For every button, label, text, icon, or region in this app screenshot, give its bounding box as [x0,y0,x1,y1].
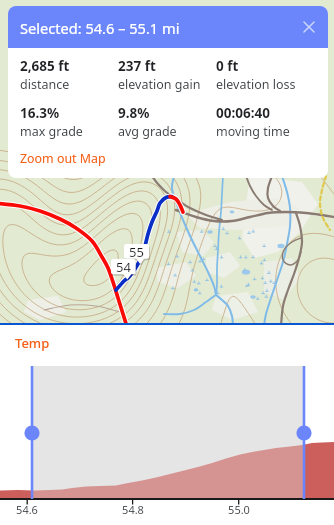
staticText: distance [20,76,70,93]
staticText: 54.6 [7,502,47,517]
staticText: 237 ft [118,57,156,75]
staticText: elevation gain [118,76,201,93]
staticText: Zoom out Map [20,150,106,167]
staticText: avg grade [118,123,177,140]
staticText: elevation loss [216,76,296,93]
button[interactable]: Close [296,14,322,40]
staticText: 2,685 ft [20,57,70,75]
staticText: moving time [216,123,290,140]
staticText: max grade [20,123,83,140]
staticText: 0 ft [216,57,239,75]
staticText: 55 [129,243,144,261]
staticText: 00:06:40 [216,104,270,122]
staticText: 55.0 [219,502,259,517]
staticText: Selected: 54.6 – 55.1 mi [20,18,180,38]
staticText: Temp [15,334,50,352]
staticText: 9.8% [118,104,150,122]
staticText: 54.8 [113,502,153,517]
staticText: 54 [116,258,131,276]
button[interactable]: Zoom out Map [8,148,120,175]
staticText: 16.3% [20,104,60,122]
